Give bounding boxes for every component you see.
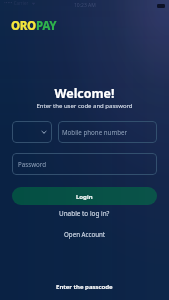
button[interactable]: Enter the passcode (0, 279, 169, 292)
button[interactable]: Unable to log in? (0, 207, 169, 220)
staticText: Password (18, 160, 46, 168)
staticText: 10:23 AM (74, 2, 96, 9)
staticText: Open Account (64, 230, 106, 238)
staticText: Enter the user code and password (0, 102, 169, 110)
staticText: Login (76, 192, 93, 200)
button[interactable]: Login (12, 187, 157, 205)
staticText: PAY (36, 18, 57, 34)
button[interactable]: Select user code (12, 121, 52, 143)
staticText: Unable to log in? (59, 209, 110, 218)
staticText: ••••• Carrier (4, 0, 29, 6)
button[interactable]: Open Account (0, 227, 169, 240)
staticText: ORO (11, 18, 36, 34)
button[interactable]: Mobile phone number (58, 121, 157, 143)
staticText: Enter the passcode (56, 282, 113, 290)
button[interactable]: Password (12, 153, 157, 175)
staticText: Welcome! (0, 85, 169, 102)
staticText: Mobile phone number (62, 128, 128, 136)
